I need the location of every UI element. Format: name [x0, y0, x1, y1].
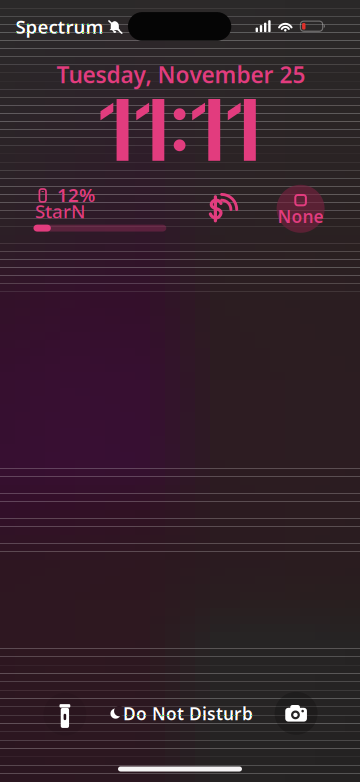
staticText: Tuesday, November 25 — [56, 59, 305, 89]
staticText: Spectrum — [15, 14, 103, 39]
staticText: StarN — [35, 199, 85, 223]
button[interactable]: Flashlight — [43, 693, 86, 736]
button[interactable]: Camera — [275, 692, 318, 735]
staticText: Do Not Disturb — [123, 702, 253, 725]
staticText: 12% — [57, 182, 95, 207]
staticText: None — [278, 205, 324, 228]
